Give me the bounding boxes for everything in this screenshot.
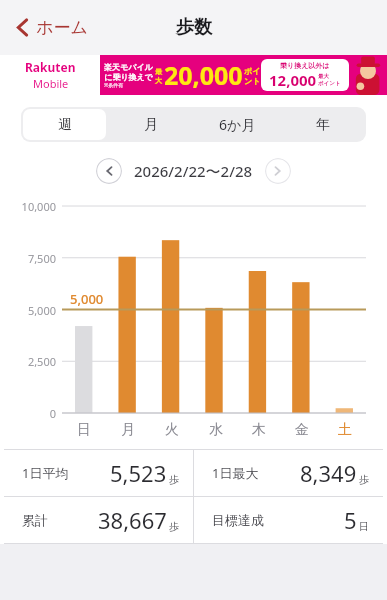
staticText: 歩	[169, 473, 179, 486]
button[interactable]: 目標達成	[194, 497, 383, 543]
staticText: ント	[244, 76, 261, 86]
staticText: 5,523	[110, 458, 167, 488]
staticText: 乗り換え以外は	[280, 61, 330, 70]
staticText: 6か月	[219, 115, 256, 134]
staticText: 年	[316, 116, 330, 134]
staticText: 最大	[318, 73, 329, 80]
staticText: 大	[155, 76, 162, 85]
staticText: 火	[165, 421, 179, 439]
button[interactable]: 累計	[4, 497, 193, 543]
button[interactable]: 1日最大	[194, 450, 383, 496]
staticText: 12,000	[269, 70, 317, 90]
staticText: 金	[295, 421, 309, 439]
staticText: 日	[77, 421, 91, 439]
button[interactable]: Previous week	[96, 158, 122, 184]
staticText: ポイント	[318, 80, 341, 87]
staticText: 2026/2/22〜2/28	[134, 161, 253, 181]
staticText: 20,000	[164, 58, 243, 92]
staticText: 水	[209, 421, 223, 439]
staticText: Mobile	[33, 76, 69, 91]
staticText: 累計	[22, 512, 48, 528]
button[interactable]: ホーム	[10, 11, 94, 44]
staticText: 5	[344, 505, 357, 535]
button[interactable]: 6か月	[196, 109, 278, 140]
staticText: 週	[58, 116, 72, 134]
staticText: 2,500	[0, 354, 56, 369]
staticText: 楽天モバイル	[104, 62, 153, 72]
staticText: 1日最大	[212, 464, 259, 482]
staticText: 5,000	[70, 290, 104, 308]
staticText: 10,000	[0, 199, 56, 214]
staticText: 最	[155, 67, 162, 76]
button[interactable]: 月	[110, 109, 192, 140]
staticText: ポイ	[244, 66, 261, 76]
staticText: 目標達成	[212, 512, 264, 528]
staticText: 1日平均	[22, 464, 69, 482]
button[interactable]: Rakuten Mobile advertisement	[0, 55, 387, 95]
staticText: 歩	[359, 473, 369, 486]
staticText: 月	[144, 116, 158, 134]
button[interactable]: 年	[282, 109, 364, 140]
staticText: 5,000	[0, 303, 56, 318]
button[interactable]: 1日平均	[4, 450, 193, 496]
staticText: ※条件有	[104, 82, 124, 89]
staticText: 0	[0, 406, 56, 421]
staticText: Rakuten	[25, 59, 76, 75]
staticText: 木	[252, 421, 266, 439]
staticText: 7,500	[0, 251, 56, 266]
staticText: 土	[338, 421, 352, 439]
staticText: 月	[121, 421, 135, 439]
staticText: 歩	[169, 520, 179, 533]
staticText: 8,349	[300, 458, 357, 488]
button[interactable]: Next week	[265, 158, 291, 184]
staticText: 38,667	[98, 505, 167, 535]
staticText: に乗り換えで	[104, 72, 153, 82]
staticText: ホーム	[36, 17, 88, 38]
staticText: 日	[359, 520, 369, 533]
button[interactable]: 週	[23, 109, 106, 140]
staticText: 歩数	[176, 16, 212, 39]
